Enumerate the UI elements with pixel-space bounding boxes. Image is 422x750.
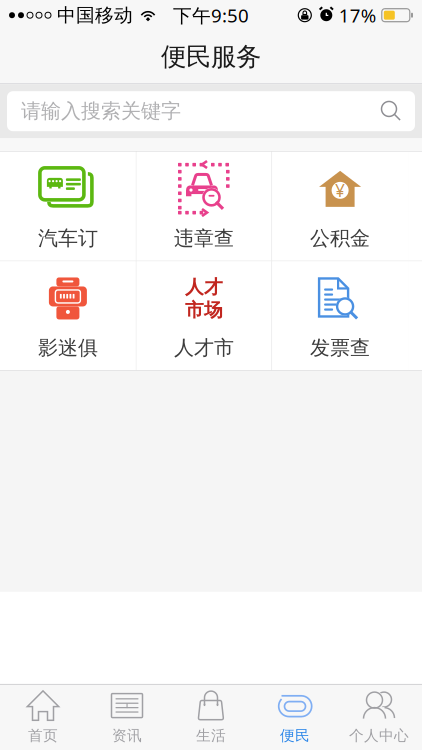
staticText: 中国移动 bbox=[57, 4, 133, 27]
button[interactable]: 首页 bbox=[1, 685, 85, 750]
staticText: 生活 bbox=[196, 727, 226, 745]
staticText: 市场 bbox=[185, 298, 223, 321]
staticText: 影迷俱 bbox=[38, 336, 98, 360]
staticText: 便民服务 bbox=[161, 41, 261, 72]
staticText: 请输入搜索关键字 bbox=[21, 99, 181, 123]
button[interactable]: 生活 bbox=[169, 685, 253, 750]
button[interactable]: 请输入搜索关键字 bbox=[7, 91, 415, 131]
button[interactable]: 汽车订 bbox=[0, 152, 136, 261]
staticText: 17% bbox=[339, 3, 377, 28]
button[interactable]: 影迷俱 bbox=[0, 261, 136, 370]
staticText: 个人中心 bbox=[349, 727, 409, 745]
button[interactable]: 个人中心 bbox=[337, 685, 421, 750]
staticText: 发票查 bbox=[310, 336, 370, 360]
staticText: 人才 bbox=[185, 275, 223, 298]
button[interactable]: ¥ bbox=[272, 152, 408, 261]
button[interactable]: 违章查 bbox=[136, 152, 271, 261]
staticText: 首页 bbox=[28, 727, 58, 745]
staticText: 资讯 bbox=[112, 727, 142, 745]
staticText: 下午9:50 bbox=[173, 3, 249, 28]
staticText: 违章查 bbox=[174, 226, 234, 251]
staticText: 人才市 bbox=[174, 336, 234, 360]
staticText: 便民 bbox=[280, 727, 310, 745]
staticText: 汽车订 bbox=[38, 226, 98, 251]
button[interactable]: 便民 bbox=[253, 685, 337, 750]
staticText: ¥ bbox=[335, 179, 345, 202]
button[interactable]: 人才 bbox=[136, 261, 271, 370]
button[interactable]: 资讯 bbox=[85, 685, 169, 750]
staticText: 公积金 bbox=[310, 226, 370, 251]
button[interactable]: 发票查 bbox=[272, 261, 408, 370]
